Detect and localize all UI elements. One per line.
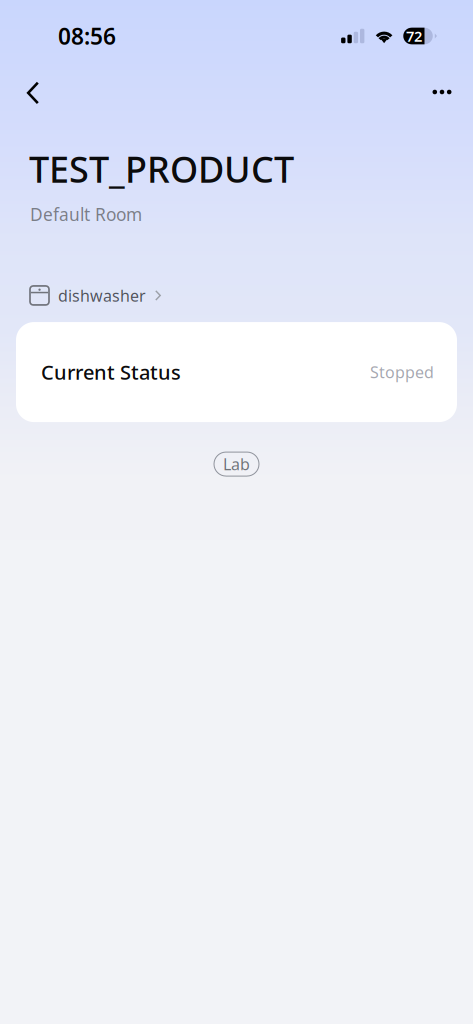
staticText: Default Room — [30, 203, 142, 226]
staticText: dishwasher — [58, 285, 146, 306]
staticText: Current Status — [41, 359, 181, 385]
button[interactable]: More options — [420, 68, 464, 116]
button[interactable]: dishwasher — [0, 226, 161, 306]
staticText: 08:56 — [58, 21, 116, 51]
staticText: TEST_PRODUCT — [29, 145, 294, 193]
staticText: 72 — [406, 26, 422, 46]
staticText: Stopped — [370, 361, 434, 383]
button[interactable]: Back — [9, 68, 57, 116]
staticText: Lab — [223, 453, 250, 475]
